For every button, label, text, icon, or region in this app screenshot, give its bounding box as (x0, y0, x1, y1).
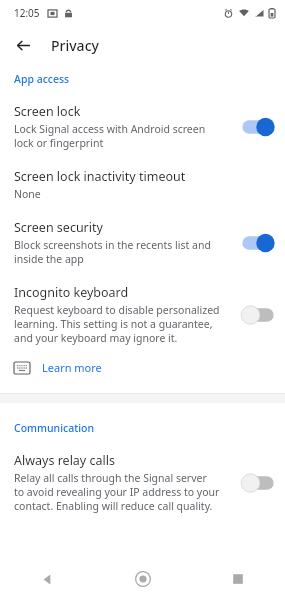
button[interactable]: Recents (190, 558, 285, 600)
button[interactable]: Incognito keyboard (0, 275, 285, 354)
button[interactable]: Back (0, 558, 95, 600)
button[interactable]: Toggle off (241, 472, 275, 494)
button[interactable]: Screen security (0, 210, 285, 275)
staticText: None (14, 187, 41, 201)
button[interactable]: Back (10, 32, 36, 58)
staticText: Learn more (42, 360, 102, 375)
staticText: Block screenshots in the recents list an… (14, 238, 211, 266)
button[interactable]: Always relay calls (0, 443, 285, 522)
staticText: Lock Signal access with Android screen l… (14, 122, 206, 150)
staticText: Screen lock inactivity timeout (14, 168, 186, 185)
staticText: App access (14, 72, 70, 86)
button[interactable]: Home (95, 558, 190, 600)
staticText: Screen lock (14, 103, 81, 120)
staticText: Request keyboard to disable personalized… (14, 303, 220, 345)
button[interactable]: Learn more (0, 354, 285, 381)
staticText: Screen security (14, 219, 103, 236)
staticText: Incognito keyboard (14, 284, 129, 301)
staticText: Communication (14, 421, 94, 435)
staticText: Privacy (51, 36, 99, 55)
button[interactable]: Toggle on (241, 232, 275, 254)
button[interactable]: Screen lock (0, 94, 285, 159)
staticText: Always relay calls (14, 452, 115, 469)
staticText: Relay all calls through the Signal serve… (14, 471, 220, 513)
button[interactable]: Toggle on (241, 116, 275, 138)
staticText: 12:05 (14, 6, 40, 20)
button[interactable]: Toggle off (241, 304, 275, 326)
button[interactable]: Screen lock inactivity timeout (0, 159, 285, 210)
